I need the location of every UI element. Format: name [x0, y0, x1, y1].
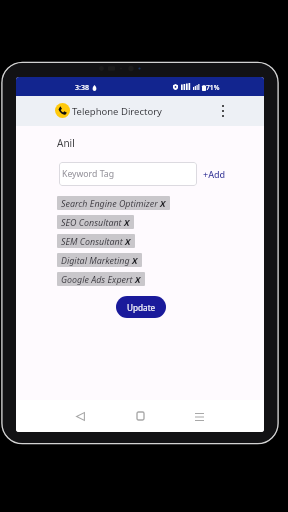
staticText: Anil: [57, 136, 75, 150]
button[interactable]: Digital Marketing: [57, 253, 142, 267]
staticText: Digital Marketing: [61, 254, 130, 266]
staticText: +Add: [203, 168, 226, 180]
staticText: SEO Consultant: [61, 216, 122, 228]
button[interactable]: Back: [71, 407, 89, 425]
staticText: Google Ads Expert: [61, 273, 133, 285]
button[interactable]: Home: [131, 407, 149, 425]
button[interactable]: SEM Consultant: [57, 234, 135, 248]
staticText: 3:38: [75, 83, 89, 93]
button[interactable]: Update: [116, 296, 166, 318]
staticText: SEM Consultant: [61, 235, 123, 247]
staticText: Search Engine Optimizer: [61, 197, 158, 209]
staticText: 71%: [206, 83, 220, 92]
staticText: Telephone Directory: [72, 105, 162, 118]
staticText: X: [125, 235, 131, 247]
staticText: Keyword Tag: [62, 168, 114, 180]
button[interactable]: Search Engine Optimizer: [57, 196, 170, 210]
staticText: Update: [127, 302, 156, 313]
button[interactable]: Google Ads Expert: [57, 272, 145, 286]
button[interactable]: SEO Consultant: [57, 215, 134, 229]
staticText: X: [135, 273, 141, 285]
button[interactable]: Keyword Tag: [59, 162, 197, 186]
staticText: X: [160, 197, 166, 209]
button[interactable]: More options: [214, 99, 232, 123]
staticText: X: [132, 254, 138, 266]
button[interactable]: Recent apps: [190, 408, 208, 426]
staticText: X: [124, 216, 130, 228]
button[interactable]: +Add: [201, 163, 227, 185]
